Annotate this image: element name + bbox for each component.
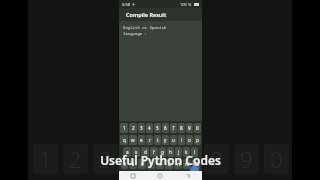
staticText: g: [161, 149, 164, 155]
staticText: n: [177, 161, 180, 167]
button[interactable]: k: [183, 147, 190, 157]
button[interactable]: v: [156, 159, 164, 169]
button[interactable]: Recents: [119, 171, 146, 180]
staticText: t: [157, 137, 159, 143]
staticText: 3: [99, 144, 112, 174]
button[interactable]: 2: [129, 123, 137, 133]
button[interactable]: m: [183, 159, 191, 169]
button[interactable]: 0: [194, 123, 201, 133]
button[interactable]: z: [129, 159, 137, 169]
staticText: p: [196, 137, 199, 143]
button[interactable]: r: [146, 135, 153, 145]
button[interactable]: o: [186, 135, 193, 145]
staticText: k: [185, 149, 188, 155]
button[interactable]: p: [194, 135, 201, 145]
button[interactable]: 6: [162, 123, 169, 133]
staticText: v: [159, 161, 162, 167]
staticText: language :: [123, 31, 147, 36]
button[interactable]: 8: [178, 123, 185, 133]
staticText: 2: [69, 144, 82, 174]
staticText: e: [140, 137, 143, 143]
button[interactable]: c: [147, 159, 155, 169]
button[interactable]: b: [165, 159, 173, 169]
staticText: 6: [164, 125, 167, 131]
button[interactable]: f: [150, 147, 158, 157]
staticText: w: [131, 137, 135, 143]
button[interactable]: g: [159, 147, 166, 157]
button[interactable]: d: [141, 147, 149, 157]
button[interactable]: 9: [186, 123, 193, 133]
staticText: 9: [240, 144, 253, 174]
staticText: h: [169, 149, 172, 155]
staticText: x: [141, 161, 144, 167]
button[interactable]: s: [132, 147, 140, 157]
staticText: 4: [148, 125, 151, 131]
button[interactable]: Back: [174, 171, 202, 180]
staticText: j: [178, 149, 180, 155]
button[interactable]: h: [167, 147, 174, 157]
staticText: 8: [210, 144, 223, 174]
staticText: f: [153, 149, 155, 155]
button[interactable]: t: [154, 135, 161, 145]
staticText: ⇧: [123, 162, 127, 167]
button[interactable]: 4: [146, 123, 153, 133]
staticText: 100 %: [180, 2, 192, 7]
staticText: 7: [172, 125, 175, 131]
button[interactable]: 5: [154, 123, 161, 133]
staticText: y: [164, 137, 167, 143]
staticText: b: [168, 161, 171, 167]
staticText: z: [132, 161, 135, 167]
button[interactable]: e: [138, 135, 145, 145]
staticText: Compile Result: [126, 11, 167, 18]
staticText: i: [181, 137, 183, 143]
staticText: u: [172, 137, 175, 143]
button[interactable]: l: [191, 147, 198, 157]
staticText: 5:58: [122, 2, 130, 7]
staticText: 2: [132, 125, 135, 131]
staticText: English or Spanish: [123, 25, 167, 30]
button[interactable]: j: [175, 147, 182, 157]
staticText: m: [185, 161, 190, 167]
staticText: c: [150, 161, 153, 167]
staticText: 1: [123, 125, 126, 131]
button[interactable]: Home: [146, 171, 174, 180]
staticText: 3: [140, 125, 143, 131]
staticText: a: [126, 149, 129, 155]
staticText: s: [135, 149, 138, 155]
button[interactable]: y: [162, 135, 169, 145]
staticText: 0: [270, 144, 283, 174]
button[interactable]: ⌫: [192, 159, 200, 169]
staticText: 9: [188, 125, 191, 131]
staticText: o: [188, 137, 191, 143]
staticText: r: [149, 137, 151, 143]
button[interactable]: w: [129, 135, 137, 145]
button[interactable]: x: [138, 159, 146, 169]
button[interactable]: a: [123, 147, 131, 157]
button[interactable]: 1: [120, 123, 128, 133]
staticText: d: [144, 149, 147, 155]
staticText: 5: [156, 125, 159, 131]
button[interactable]: n: [174, 159, 182, 169]
button[interactable]: ⇧: [121, 159, 128, 169]
button[interactable]: u: [170, 135, 177, 145]
button[interactable]: q: [120, 135, 128, 145]
button[interactable]: i: [178, 135, 185, 145]
staticText: 0: [196, 125, 199, 131]
button[interactable]: 3: [138, 123, 145, 133]
staticText: 8: [180, 125, 183, 131]
staticText: l: [194, 149, 196, 155]
button[interactable]: 7: [170, 123, 177, 133]
staticText: Useful Python Codes: [100, 152, 221, 168]
staticText: q: [123, 137, 126, 143]
staticText: ⌫: [193, 162, 200, 167]
button[interactable]: Voice input: [190, 166, 199, 175]
